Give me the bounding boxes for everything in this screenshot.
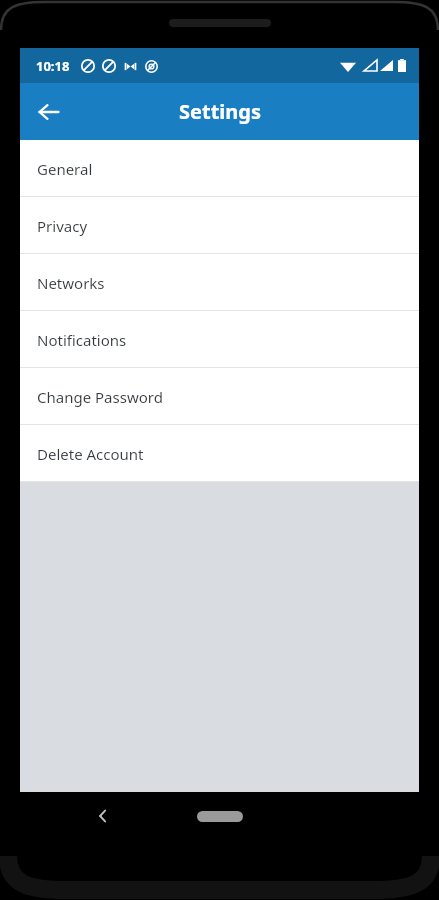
staticText: Notifications — [37, 330, 127, 350]
staticText: Settings — [179, 98, 261, 125]
staticText: 10:18 — [36, 57, 70, 75]
button[interactable]: Notifications — [20, 311, 419, 368]
staticText: Networks — [37, 273, 105, 293]
button[interactable]: Home — [197, 811, 243, 822]
staticText: General — [37, 159, 93, 179]
staticText: Change Password — [37, 387, 163, 407]
button[interactable]: General — [20, 140, 419, 197]
button[interactable]: Networks — [20, 254, 419, 311]
button[interactable]: Privacy — [20, 197, 419, 254]
button[interactable]: Back — [25, 88, 73, 136]
button[interactable]: Back — [83, 796, 123, 836]
staticText: Delete Account — [37, 444, 144, 464]
staticText: Privacy — [37, 216, 88, 236]
button[interactable]: Change Password — [20, 368, 419, 425]
button[interactable]: Delete Account — [20, 425, 419, 482]
